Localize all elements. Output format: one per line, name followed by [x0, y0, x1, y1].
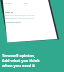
staticText: Tenzwell opinion, Add what you think whe… — [2, 53, 40, 68]
staticText: Forgot password? — [5, 21, 21, 24]
staticText: Sign in — [5, 10, 13, 13]
staticText: tenzwell login — [5, 2, 29, 5]
staticText: Enter your email address and the passwor… — [5, 14, 35, 20]
